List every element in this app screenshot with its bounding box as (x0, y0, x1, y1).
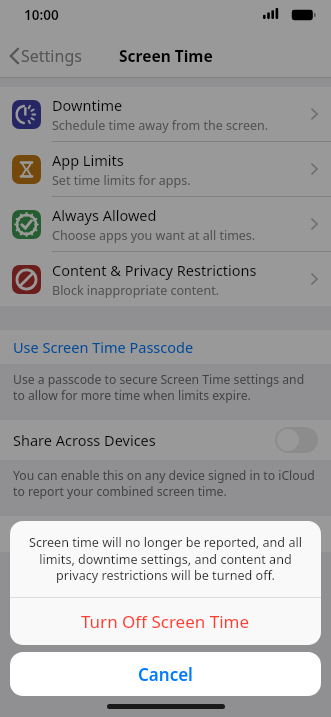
staticText: Always Allowed (52, 205, 157, 225)
staticText: Block inappropriate content. (52, 282, 219, 299)
button[interactable]: Share Across Devices (0, 420, 331, 460)
button[interactable]: App Limits (0, 142, 331, 197)
staticText: Share Across Devices (13, 430, 275, 450)
staticText: Use a passcode to secure Screen Time set… (13, 371, 311, 403)
staticText: Use Screen Time Passcode (13, 337, 194, 357)
staticText: You can enable this on any device signed… (13, 467, 315, 499)
staticText: Turn Off Screen Time (13, 524, 157, 544)
staticText: Downtime (52, 95, 123, 115)
button[interactable]: Downtime (0, 87, 331, 142)
staticText: Cancel (138, 663, 193, 686)
staticText: Content & Privacy Restrictions (52, 260, 257, 280)
staticText: Settings (21, 45, 82, 67)
staticText: 10:00 (24, 6, 59, 24)
staticText: Turn Off Screen Time (81, 610, 250, 633)
button[interactable]: Use Screen Time Passcode (0, 330, 331, 364)
staticText: App Limits (52, 150, 124, 170)
staticText: Screen Time (119, 45, 213, 66)
button[interactable]: Turn Off Screen Time (10, 598, 321, 645)
button[interactable]: Always Allowed (0, 197, 331, 252)
staticText: Schedule time away from the screen. (52, 117, 269, 134)
button[interactable]: Content & Privacy Restrictions (0, 252, 331, 306)
button[interactable]: Cancel (10, 652, 321, 696)
staticText: Screen time will no longer be reported, … (24, 534, 307, 584)
staticText: Choose apps you want at all times. (52, 227, 256, 244)
button[interactable]: Turn Off Screen Time (0, 516, 331, 552)
staticText: Set time limits for apps. (52, 172, 191, 189)
button[interactable]: Settings (6, 45, 82, 67)
